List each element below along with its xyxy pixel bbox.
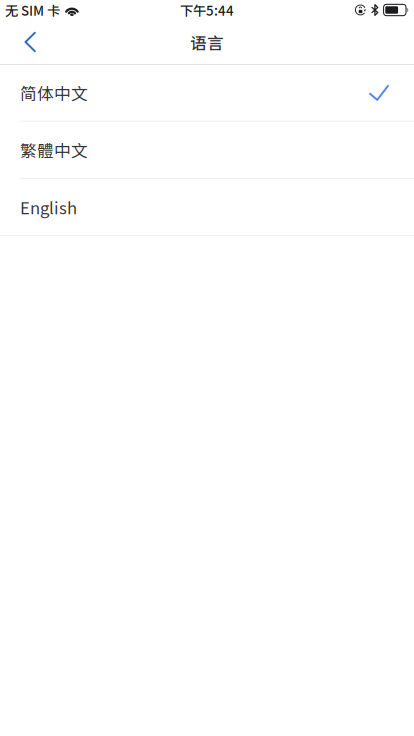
button[interactable]: 返回 bbox=[0, 21, 54, 63]
button[interactable]: 繁體中文 bbox=[0, 122, 414, 178]
staticText: 繁體中文 bbox=[20, 138, 88, 162]
staticText: 无 SIM 卡 bbox=[5, 0, 60, 20]
staticText: English bbox=[20, 195, 77, 219]
button[interactable]: 简体中文 bbox=[0, 65, 414, 121]
staticText: 简体中文 bbox=[20, 81, 88, 105]
staticText: 下午5:44 bbox=[180, 0, 234, 20]
staticText: 语言 bbox=[190, 30, 224, 54]
button[interactable]: English bbox=[0, 179, 414, 235]
